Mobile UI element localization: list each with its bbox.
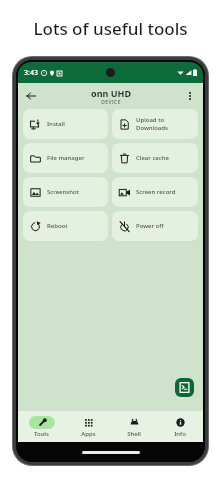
button[interactable]: Shell xyxy=(111,411,157,442)
staticText: Screen record xyxy=(136,188,176,196)
button[interactable]: Screenshot xyxy=(23,177,108,207)
button[interactable]: Clear cache xyxy=(112,143,198,173)
button[interactable]: More options xyxy=(180,86,200,106)
staticText: Screenshot xyxy=(47,188,79,196)
staticText: Power off xyxy=(136,222,164,230)
button[interactable]: Screen record xyxy=(112,177,198,207)
staticText: 3:43 xyxy=(24,68,38,78)
button[interactable]: Power off xyxy=(112,211,198,241)
button[interactable]: Tools xyxy=(18,411,65,442)
staticText: Apps xyxy=(81,430,96,438)
button[interactable]: Info xyxy=(157,411,203,442)
button[interactable]: Install xyxy=(23,109,108,139)
staticText: Install xyxy=(47,120,65,128)
button[interactable]: File manager xyxy=(23,143,108,173)
staticText: Shell xyxy=(127,430,141,438)
button[interactable]: Apps xyxy=(65,411,111,442)
staticText: Lots of useful tools xyxy=(33,17,188,40)
staticText: Reboot xyxy=(47,222,68,230)
button[interactable]: Terminal xyxy=(175,378,194,397)
staticText: Info xyxy=(174,430,186,438)
staticText: Clear cache xyxy=(136,154,169,162)
staticText: Upload to Downloads xyxy=(136,116,168,132)
button[interactable]: Back xyxy=(21,86,41,106)
staticText: Tools xyxy=(34,430,49,438)
staticText: File manager xyxy=(47,154,85,162)
staticText: DEVICE xyxy=(101,99,121,106)
button[interactable]: Upload to Downloads xyxy=(112,109,198,139)
staticText: onn UHD xyxy=(91,87,131,99)
button[interactable]: Reboot xyxy=(23,211,108,241)
